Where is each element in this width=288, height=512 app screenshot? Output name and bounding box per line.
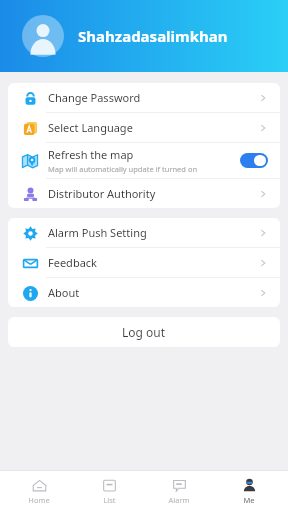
staticText: Change Password [48,90,141,105]
staticText: Refresh the map [48,147,134,162]
button[interactable]: Feedback [8,248,280,277]
button[interactable]: Select Language [8,113,280,142]
staticText: Shahzadasalimkhan [78,26,228,46]
button[interactable]: Shahzadasalimkhan [0,15,288,57]
button[interactable]: Refresh the map toggle, on [240,153,268,168]
button[interactable]: Alarm Push Setting [8,218,280,247]
staticText: List [103,495,116,505]
staticText: About [48,285,80,300]
button[interactable]: List [78,471,140,512]
staticText: Map will automatically update if turned … [48,164,198,174]
button[interactable]: Me [218,471,280,512]
button[interactable]: About [8,278,280,307]
button[interactable]: Home [8,471,70,512]
button[interactable]: Change Password [8,83,280,112]
button[interactable]: Refresh the map [8,143,280,178]
staticText: Home [28,495,50,505]
button[interactable]: Log out [8,317,280,347]
staticText: Me [243,495,255,505]
button[interactable]: Alarm [148,471,210,512]
staticText: Feedback [48,255,97,270]
staticText: Select Language [48,120,133,135]
staticText: Log out [122,324,166,340]
staticText: Distributor Authority [48,186,156,201]
staticText: Alarm Push Setting [48,225,147,240]
staticText: Alarm [168,495,190,505]
button[interactable]: Distributor Authority [8,179,280,208]
